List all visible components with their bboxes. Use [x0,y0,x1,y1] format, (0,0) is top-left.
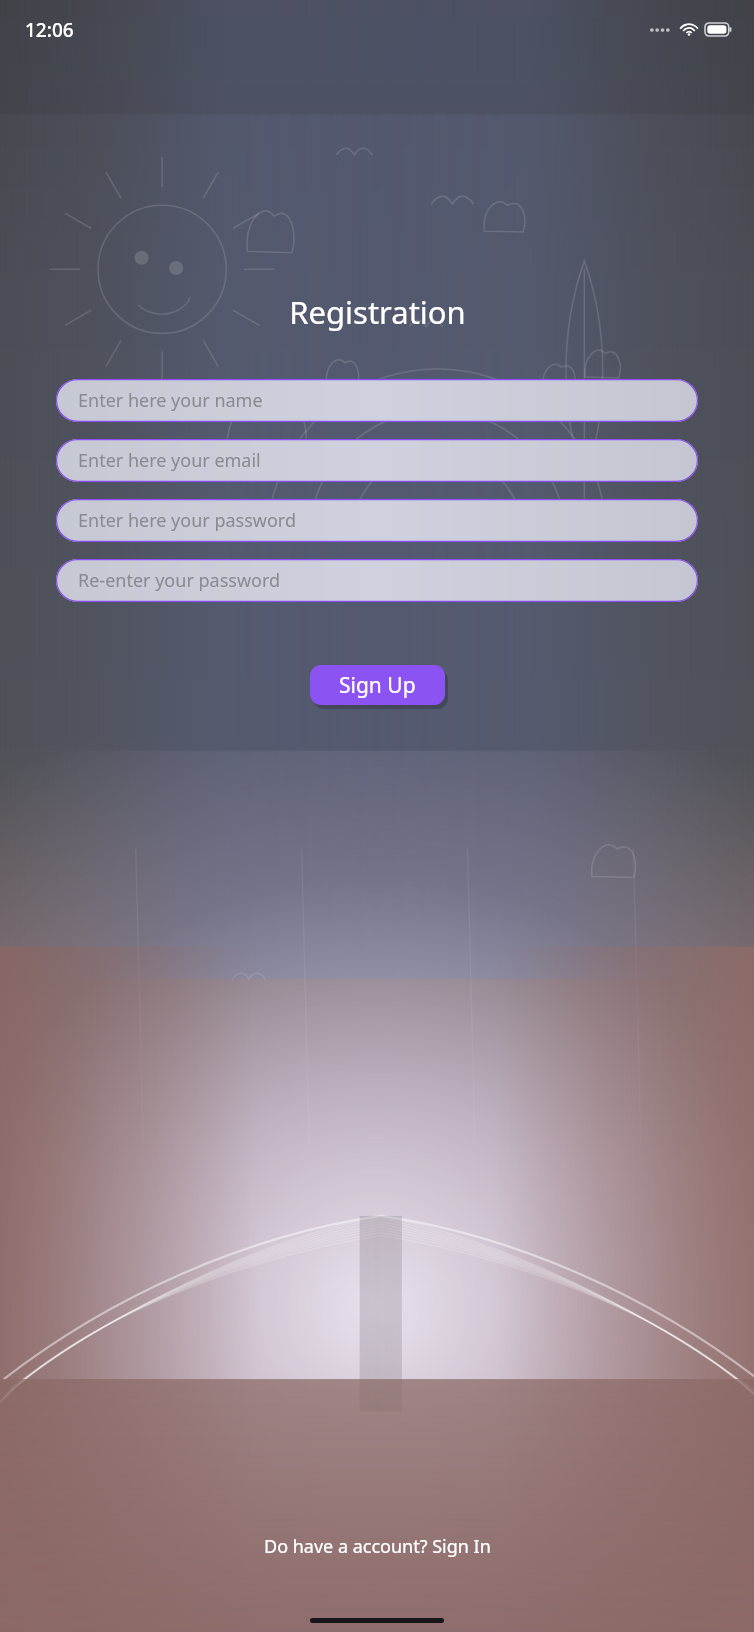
button[interactable]: Enter here your email [56,439,698,482]
staticText: Sign Up [339,671,416,700]
staticText: 12:06 [25,17,74,43]
staticText: Enter here your email [78,448,261,473]
button[interactable]: Enter here your password [56,499,698,542]
staticText: Re-enter your password [78,568,281,593]
button[interactable]: Do have a account? Sign In [256,1530,499,1563]
button[interactable]: Re-enter your password [56,559,698,602]
button[interactable]: Enter here your name [56,379,698,422]
staticText: Do have a account? Sign In [264,1534,491,1559]
button[interactable]: Sign Up [310,665,445,705]
staticText: Enter here your name [78,388,263,413]
staticText: Enter here your password [78,508,296,533]
staticText: Registration [289,291,466,333]
